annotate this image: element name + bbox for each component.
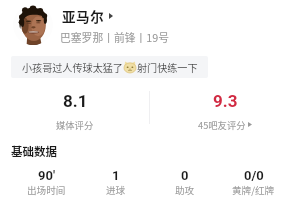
staticText: 1 (112, 168, 120, 183)
staticText: 90' (38, 168, 56, 183)
button[interactable]: 小孩哥过人传球太猛了 (11, 56, 208, 78)
button[interactable]: 1 (81, 168, 150, 197)
staticText: 媒体评分 (56, 118, 94, 131)
staticText: 8.1 (63, 91, 88, 111)
staticText: 45吧友评分 (198, 118, 246, 131)
staticText: 出场时间 (27, 183, 66, 197)
staticText: 亚马尔 (62, 6, 105, 26)
button[interactable]: 9.3 (150, 91, 300, 131)
staticText: 射门快练一下 (137, 60, 198, 75)
staticText: 小孩哥过人传球太猛了 (22, 60, 123, 75)
button[interactable]: 0/0 (219, 168, 288, 197)
staticText: 巴塞罗那丨前锋丨19号 (60, 29, 170, 45)
button[interactable]: 0 (150, 168, 219, 197)
staticText: 基础数据 (11, 143, 57, 160)
button[interactable]: 90' (12, 168, 81, 197)
button[interactable]: Player avatar (13, 5, 53, 45)
staticText: 0 (181, 168, 189, 183)
button[interactable]: 8.1 (0, 91, 150, 131)
staticText: 黄牌/红牌 (232, 183, 275, 197)
button[interactable]: 亚马尔 (62, 6, 113, 26)
staticText: 进球 (106, 183, 126, 197)
staticText: 9.3 (213, 91, 238, 111)
staticText: 0/0 (244, 168, 264, 183)
staticText: 助攻 (175, 183, 195, 197)
